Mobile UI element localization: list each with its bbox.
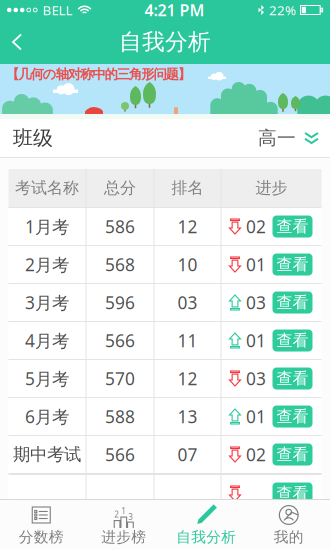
staticText: 02 — [246, 443, 266, 466]
staticText: 查看 — [276, 369, 308, 388]
button[interactable]: 查看 — [272, 329, 312, 351]
staticText: 566 — [105, 443, 135, 466]
staticText: 02 — [246, 215, 266, 238]
staticText: 2月考 — [25, 253, 69, 276]
staticText: 01 — [246, 253, 266, 276]
staticText: 1 — [121, 505, 126, 516]
staticText: 总分 — [104, 178, 136, 198]
staticText: 01 — [246, 405, 266, 428]
staticText: 排名 — [171, 178, 203, 198]
staticText: 高一 — [258, 126, 296, 149]
staticText: 我的 — [274, 528, 304, 546]
staticText: 570 — [105, 367, 135, 390]
staticText: 6月考 — [25, 405, 69, 428]
button[interactable]: Back — [0, 20, 37, 63]
staticText: 01 — [246, 329, 266, 352]
button[interactable]: 自我分析 — [165, 500, 247, 550]
staticText: 查看 — [276, 484, 308, 503]
staticText: 考试名称 — [15, 178, 79, 198]
staticText: 4:21 PM — [144, 0, 204, 21]
staticText: 03 — [246, 291, 266, 314]
staticText: 查看 — [276, 407, 308, 426]
staticText: 586 — [105, 215, 135, 238]
staticText: 班级 — [13, 126, 53, 150]
button[interactable]: 我的 — [247, 500, 330, 550]
staticText: 566 — [105, 329, 135, 352]
staticText: 07 — [177, 443, 197, 466]
staticText: BELL — [42, 1, 72, 19]
staticText: 03 — [177, 291, 197, 314]
staticText: 5月考 — [25, 367, 69, 390]
button[interactable]: 查看 — [272, 482, 312, 504]
staticText: 【几何の轴对称中的三角形问题】 — [6, 66, 191, 82]
staticText: 期中考试 — [13, 444, 81, 465]
staticText: 自我分析 — [119, 28, 211, 56]
staticText: 3月考 — [25, 291, 69, 314]
staticText: 12 — [177, 215, 197, 238]
staticText: 2 — [114, 509, 119, 520]
staticText: 3 — [128, 511, 133, 522]
staticText: 596 — [105, 291, 135, 314]
staticText: 查看 — [276, 445, 308, 464]
staticText: 自我分析 — [176, 528, 236, 546]
staticText: 13 — [177, 405, 197, 428]
staticText: 查看 — [276, 293, 308, 312]
staticText: 4月考 — [25, 329, 69, 352]
staticText: 10 — [177, 253, 197, 276]
button[interactable]: 2 — [82, 500, 165, 550]
staticText: 进步榜 — [101, 528, 146, 546]
button[interactable]: 查看 — [272, 291, 312, 313]
button[interactable]: 分数榜 — [0, 500, 82, 550]
staticText: 588 — [105, 405, 135, 428]
staticText: 1月考 — [25, 215, 69, 238]
staticText: 进步 — [255, 178, 287, 198]
staticText: 分数榜 — [19, 528, 64, 546]
button[interactable]: 查看 — [272, 443, 312, 465]
staticText: 12 — [177, 367, 197, 390]
staticText: 查看 — [276, 331, 308, 350]
staticText: 11 — [177, 329, 197, 352]
staticText: 查看 — [276, 255, 308, 274]
button[interactable]: 班级 — [0, 119, 330, 157]
staticText: 查看 — [276, 217, 308, 236]
staticText: 22% — [269, 1, 296, 19]
staticText: 03 — [246, 367, 266, 390]
staticText: 568 — [105, 253, 135, 276]
button[interactable]: 查看 — [272, 367, 312, 389]
button[interactable]: 查看 — [272, 215, 312, 237]
button[interactable]: 查看 — [272, 405, 312, 427]
button[interactable]: 查看 — [272, 253, 312, 275]
